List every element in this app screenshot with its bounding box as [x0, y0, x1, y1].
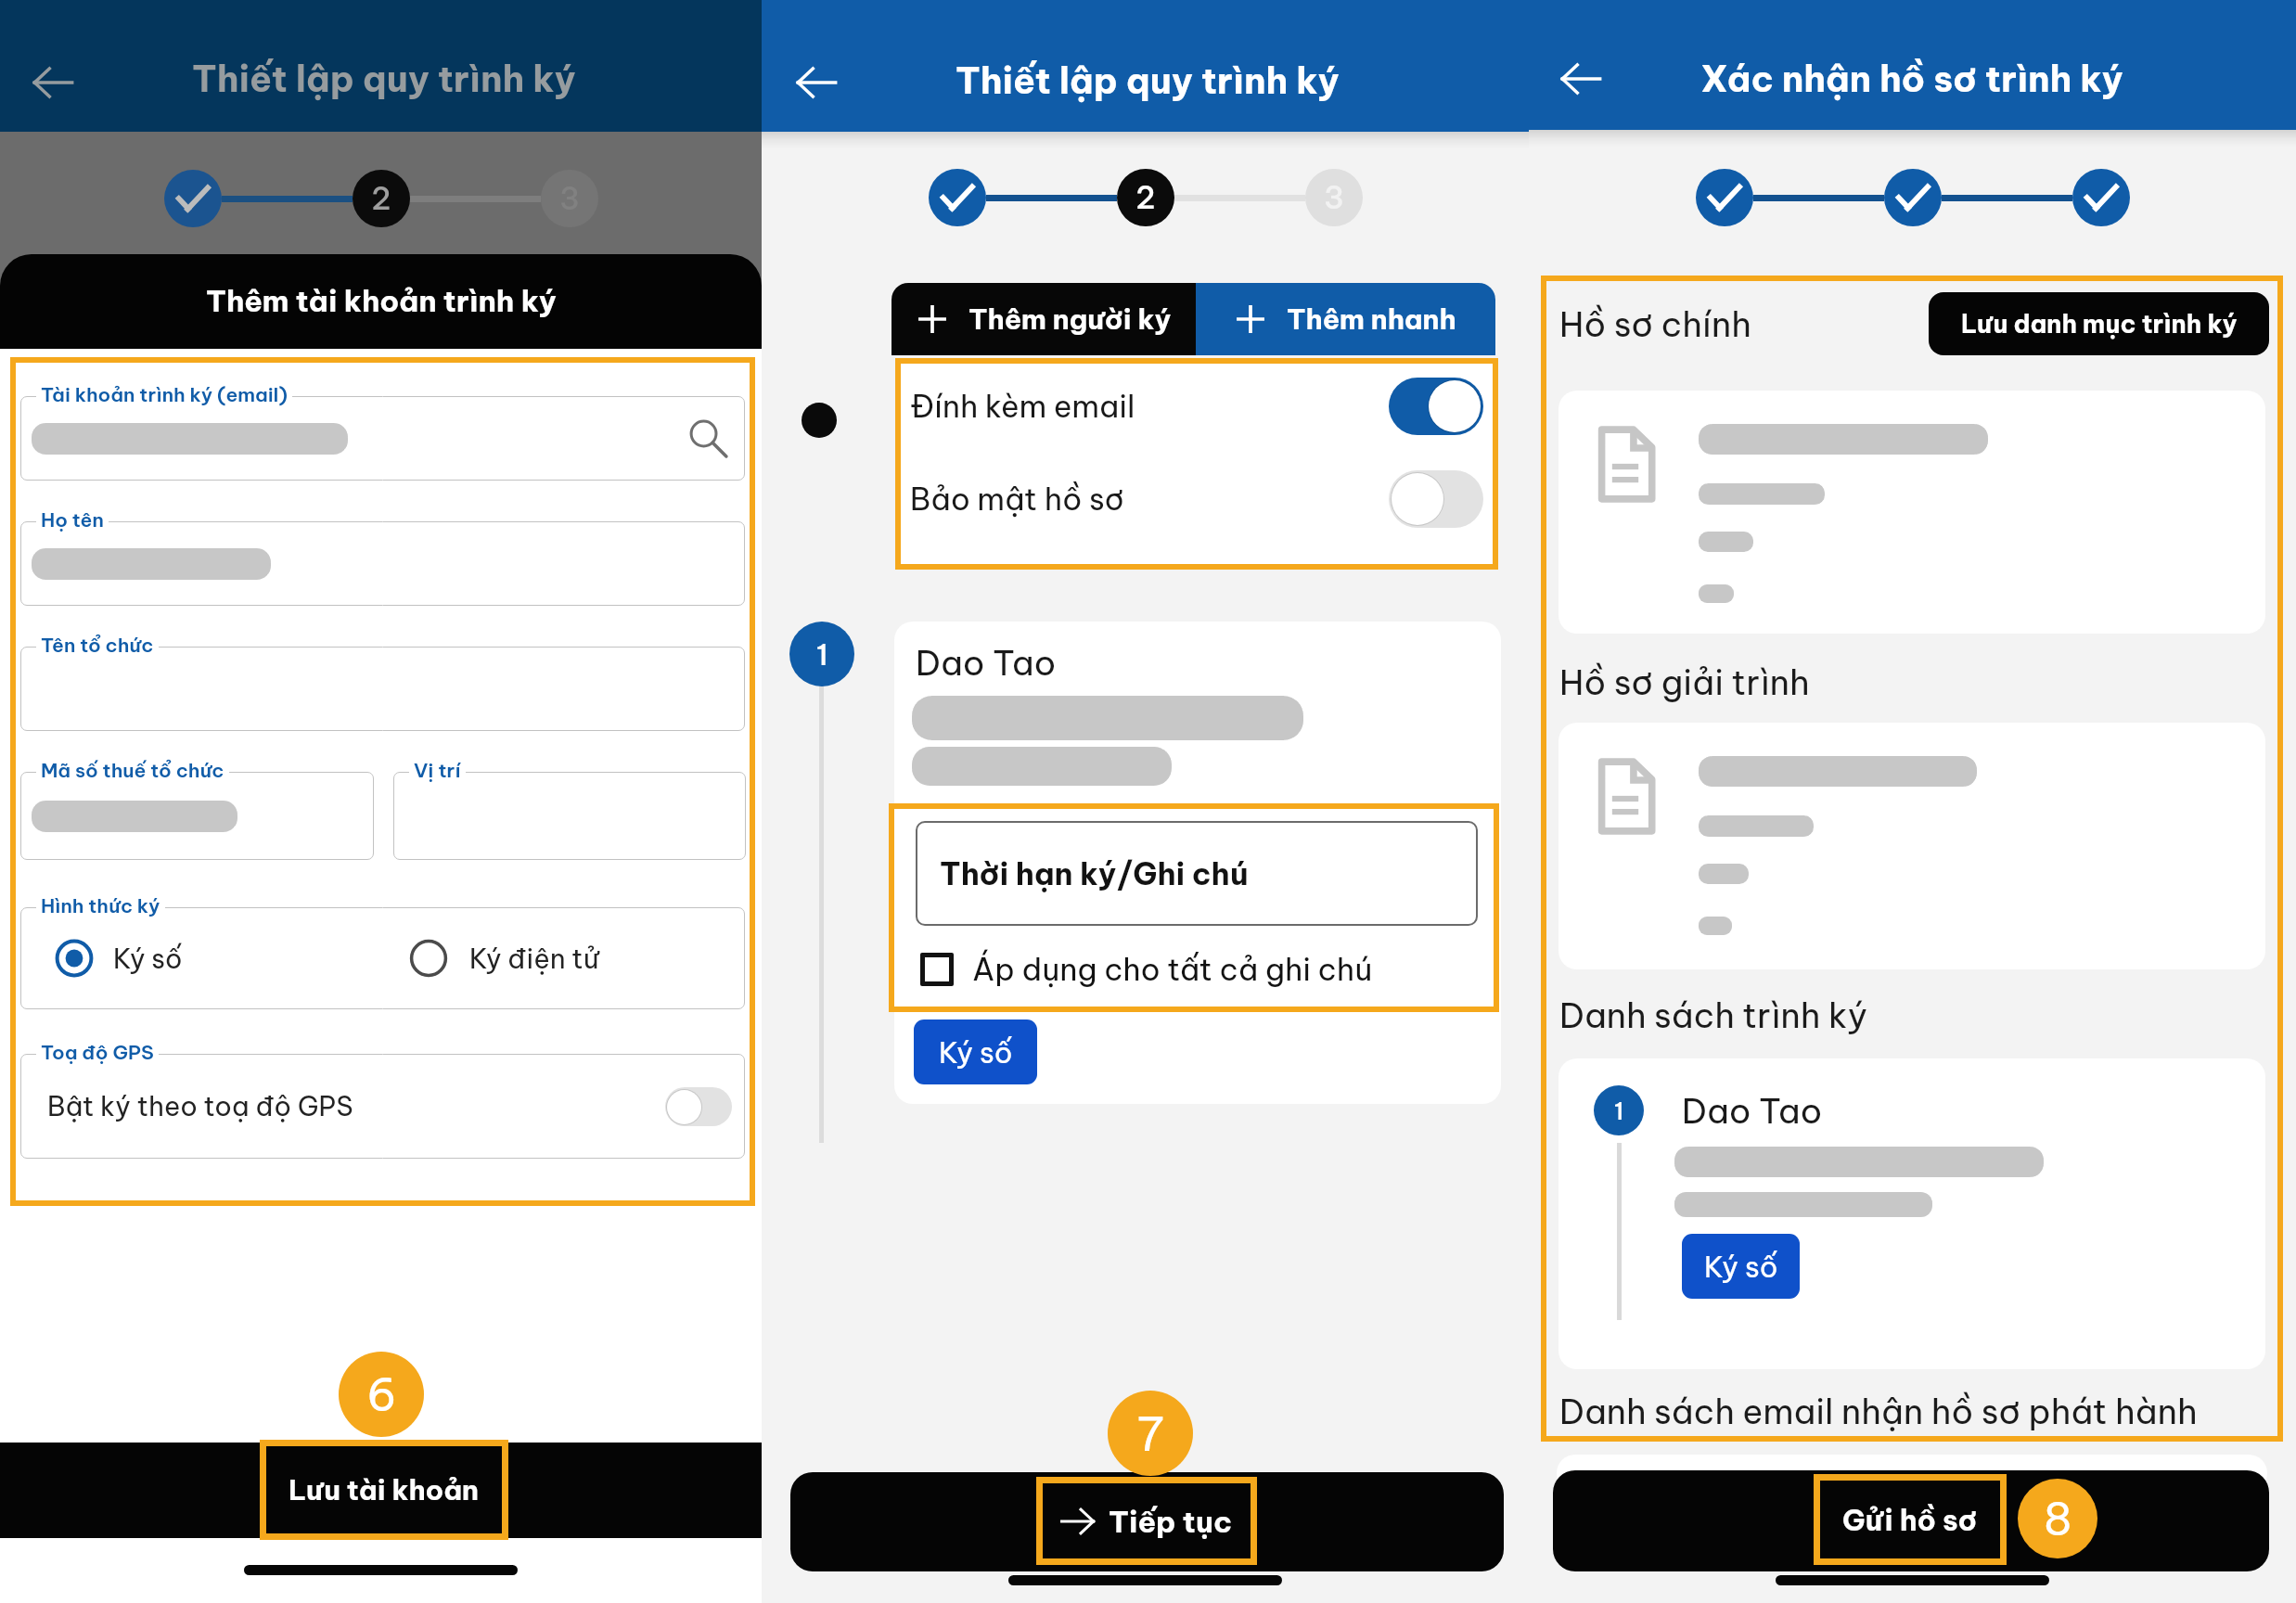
staticText: Dao Tao — [916, 641, 1057, 685]
staticText: Dao Tao — [1682, 1089, 1823, 1133]
button[interactable]: Ký điện tử — [410, 907, 599, 1009]
staticText: Đính kèm email — [910, 387, 1135, 426]
staticText: Tiếp tục — [1109, 1503, 1233, 1540]
button[interactable]: Đính kèm email — [910, 371, 1483, 442]
staticText: Thời hạn ký/Ghi chú — [940, 854, 1249, 893]
staticText: 6 — [366, 1366, 397, 1423]
staticText: 7 — [1136, 1404, 1164, 1463]
button[interactable]: Ký số — [1682, 1234, 1800, 1299]
button[interactable] — [665, 1087, 732, 1126]
button[interactable]: Ký số — [56, 907, 183, 1009]
staticText: Xác nhận hồ sơ trình ký — [1700, 56, 2123, 101]
staticText: Ký số — [939, 1034, 1013, 1071]
staticText: Lưu tài khoản — [289, 1472, 480, 1507]
staticText: Ký số — [1704, 1249, 1778, 1285]
button[interactable]: Ký số — [914, 1020, 1037, 1084]
button[interactable]: Lưu danh mục trình ký — [1929, 292, 2269, 355]
button[interactable]: Bảo mật hồ sơ — [910, 464, 1483, 534]
button[interactable] — [1558, 723, 2265, 969]
staticText: Hình thức ký — [41, 893, 160, 918]
staticText: Thiết lập quy trình ký — [956, 58, 1340, 103]
staticText: Toạ độ GPS — [41, 1040, 154, 1065]
staticText: Thêm nhanh — [1287, 301, 1456, 337]
button[interactable]: Lưu tài khoản — [260, 1440, 508, 1540]
staticText: Hồ sơ chính — [1559, 302, 1751, 346]
staticText: Ký điện tử — [469, 942, 599, 976]
button[interactable] — [1553, 1470, 2269, 1571]
staticText: 3 — [1324, 178, 1345, 217]
staticText: Tài khoản trình ký (email) — [41, 382, 288, 407]
staticText: Thêm người ký — [968, 301, 1172, 337]
staticText: Danh sách email nhận hồ sơ phát hành — [1559, 1390, 2198, 1433]
staticText: Ký số — [113, 942, 183, 976]
staticText: 2 — [1135, 178, 1156, 217]
button[interactable]: Back — [20, 50, 85, 115]
button[interactable] — [790, 1472, 1504, 1571]
staticText: Danh sách trình ký — [1559, 994, 1868, 1037]
staticText: 1 — [1614, 1096, 1624, 1126]
button[interactable] — [1389, 470, 1483, 528]
button[interactable] — [1558, 1058, 2265, 1369]
staticText: Áp dụng cho tất cả ghi chú — [972, 950, 1373, 989]
staticText: Bảo mật hồ sơ — [910, 480, 1124, 519]
staticText: Lưu danh mục trình ký — [1961, 308, 2238, 340]
staticText: Gửi hồ sơ — [1842, 1502, 1978, 1538]
staticText: Thiết lập quy trình ký — [192, 56, 576, 101]
staticText: 1 — [816, 635, 828, 673]
staticText: Tên tổ chức — [41, 633, 154, 658]
button[interactable]: Search — [686, 416, 732, 462]
staticText: Bật ký theo toạ độ GPS — [47, 1089, 353, 1123]
staticText: Thêm tài khoản trình ký — [206, 282, 557, 319]
staticText: Họ tên — [41, 507, 104, 532]
staticText: Hồ sơ giải trình — [1559, 660, 1810, 704]
staticText: Mã số thuế tổ chức — [41, 758, 224, 783]
staticText: 8 — [2044, 1491, 2072, 1547]
button[interactable] — [1558, 391, 2265, 634]
button[interactable]: Back — [1548, 46, 1613, 111]
button[interactable]: Thời hạn ký/Ghi chú — [916, 821, 1478, 926]
button[interactable] — [1389, 378, 1483, 435]
staticText: 2 — [371, 179, 391, 218]
button[interactable]: Thêm người ký — [891, 283, 1196, 355]
staticText: 3 — [559, 179, 581, 218]
staticText: Vị trí — [414, 758, 461, 783]
button[interactable] — [894, 622, 1501, 1104]
button[interactable]: Thêm nhanh — [1196, 283, 1495, 355]
button[interactable]: Áp dụng cho tất cả ghi chú — [920, 946, 1373, 993]
button[interactable]: Back — [784, 50, 849, 115]
